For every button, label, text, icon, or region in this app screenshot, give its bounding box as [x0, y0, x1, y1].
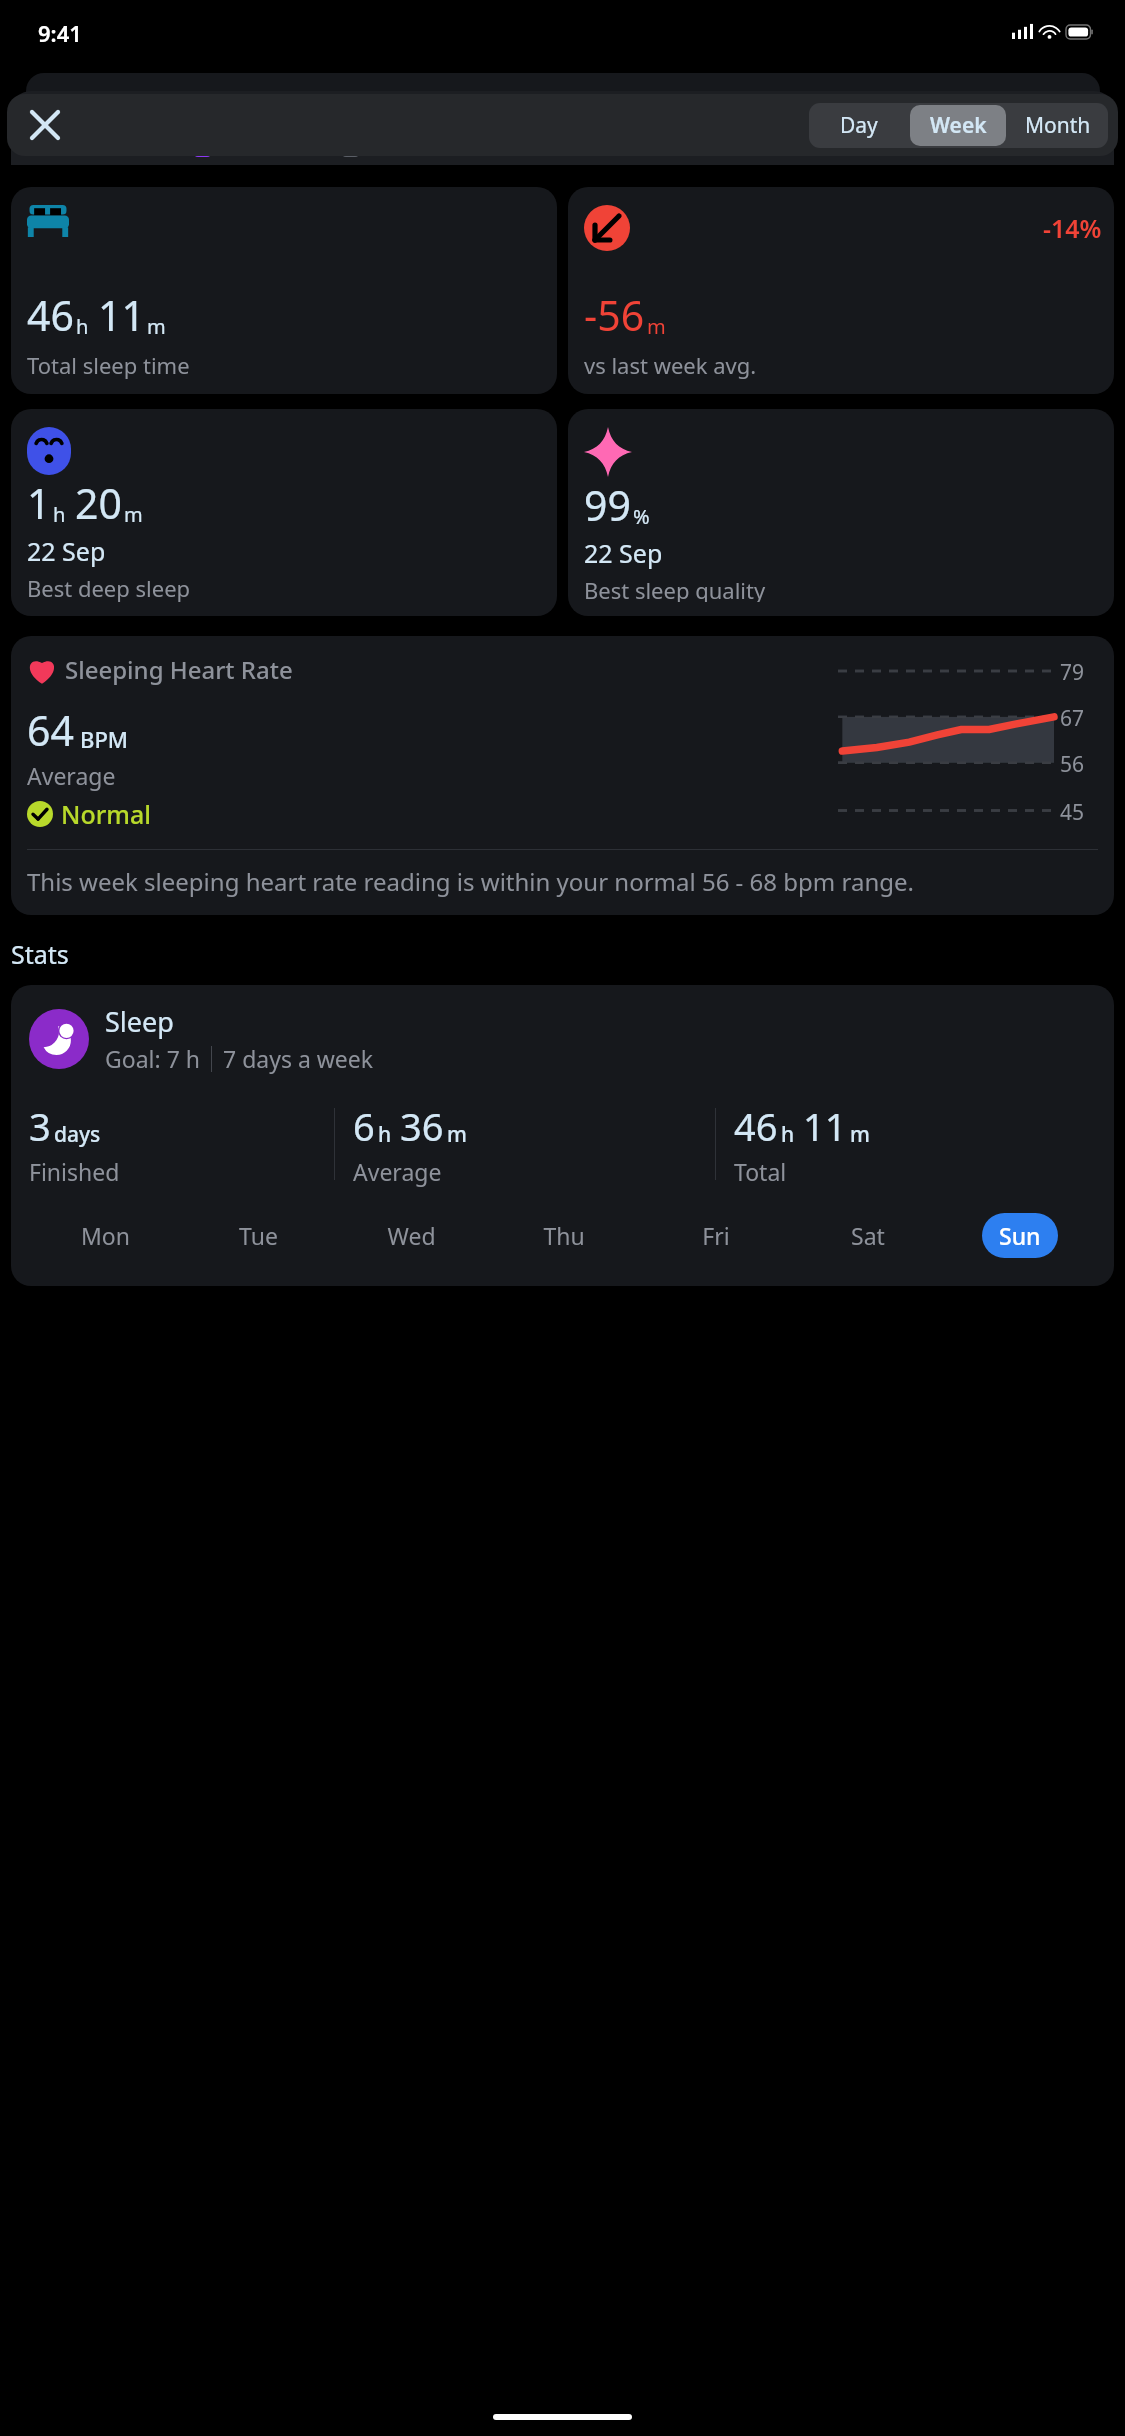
- staticText: 99: [584, 477, 631, 533]
- staticText: 20: [75, 475, 122, 531]
- button[interactable]: Fri: [702, 1220, 730, 1251]
- staticText: 36: [400, 1100, 444, 1152]
- staticText: days: [54, 1120, 101, 1149]
- staticText: -56: [584, 287, 645, 343]
- staticText: Goal: 7 h: [105, 1043, 200, 1074]
- staticText: h: [781, 1120, 795, 1149]
- button[interactable]: Close: [20, 100, 70, 150]
- staticText: h: [378, 1120, 392, 1149]
- staticText: 6: [353, 1100, 375, 1152]
- staticText: Sleep: [105, 1003, 174, 1040]
- staticText: %: [633, 503, 650, 530]
- staticText: Goal line: [85, 134, 172, 163]
- staticText: Total: [734, 1156, 787, 1187]
- staticText: Best deep sleep: [27, 573, 191, 602]
- staticText: Stats: [11, 937, 69, 971]
- button[interactable]: Sleep: [11, 985, 1114, 1286]
- button[interactable]: Day: [811, 105, 906, 146]
- staticText: This week sleeping heart rate reading is…: [27, 865, 914, 898]
- staticText: BPM: [80, 724, 129, 754]
- staticText: 11: [803, 1100, 847, 1152]
- staticText: Goal meet: [220, 134, 322, 163]
- staticText: m: [447, 1120, 467, 1149]
- staticText: Week: [930, 111, 987, 140]
- button[interactable]: Wed: [387, 1220, 436, 1251]
- button[interactable]: Week: [910, 105, 1006, 146]
- staticText: 3: [29, 1100, 51, 1152]
- button[interactable]: Month: [1010, 105, 1106, 146]
- staticText: Month: [1025, 111, 1091, 140]
- staticText: 46: [27, 287, 74, 343]
- button[interactable]: Thu: [543, 1220, 585, 1251]
- staticText: Finished: [29, 1156, 120, 1187]
- button[interactable]: Sleeping Heart Rate: [11, 636, 1114, 915]
- staticText: 7 days a week: [223, 1043, 374, 1074]
- button[interactable]: Sat: [851, 1220, 885, 1251]
- staticText: 45: [1060, 798, 1085, 827]
- staticText: m: [147, 313, 166, 340]
- staticText: Goal not meet: [368, 134, 509, 163]
- staticText: -14%: [1043, 211, 1102, 245]
- staticText: Best sleep quality: [584, 575, 766, 602]
- staticText: 64: [27, 702, 74, 758]
- button[interactable]: 46: [11, 187, 557, 394]
- staticText: m: [647, 313, 666, 340]
- button[interactable]: 1: [11, 409, 557, 616]
- staticText: Sleeping Heart Rate: [65, 653, 293, 686]
- staticText: Average: [27, 760, 116, 791]
- staticText: 56: [1060, 750, 1085, 779]
- staticText: 67: [1060, 704, 1085, 733]
- staticText: h: [76, 313, 89, 340]
- staticText: Sun: [999, 1220, 1041, 1251]
- button[interactable]: Sun: [982, 1213, 1058, 1258]
- staticText: 22 Sep: [584, 536, 663, 570]
- staticText: 9:41: [38, 18, 82, 48]
- staticText: Total sleep time: [27, 350, 190, 380]
- staticText: m: [850, 1120, 870, 1149]
- button[interactable]: 99: [568, 409, 1114, 616]
- staticText: m: [124, 501, 143, 528]
- staticText: Day: [840, 111, 878, 140]
- staticText: 79: [1060, 658, 1085, 687]
- staticText: Average: [353, 1156, 442, 1187]
- staticText: vs last week avg.: [584, 350, 757, 380]
- staticText: 22 Sep: [27, 534, 106, 568]
- button[interactable]: Tue: [239, 1220, 278, 1251]
- button[interactable]: -14%: [568, 187, 1114, 394]
- staticText: 46: [734, 1100, 778, 1152]
- staticText: 11: [98, 287, 145, 343]
- button[interactable]: Mon: [81, 1220, 130, 1251]
- staticText: Normal: [61, 797, 151, 831]
- staticText: 1: [27, 475, 51, 531]
- staticText: h: [53, 501, 66, 528]
